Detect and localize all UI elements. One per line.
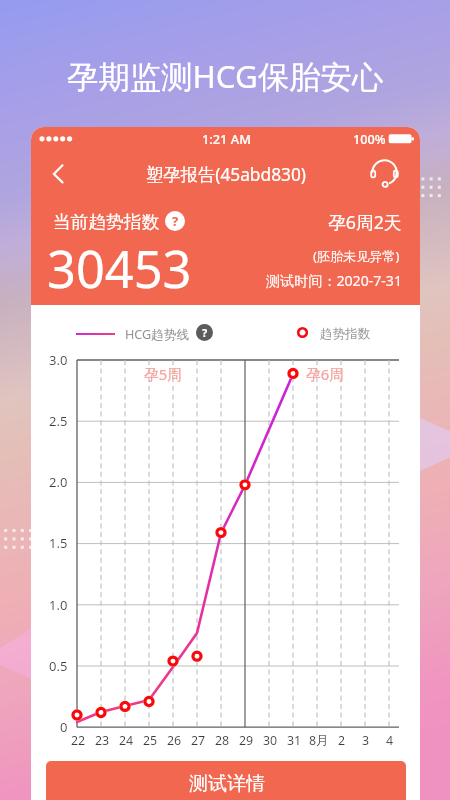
staticText: 孕6周2天 [328,210,402,234]
staticText: 27 [191,732,206,749]
staticText: (胚胎未见异常) [313,247,400,265]
button[interactable]: Back [40,155,78,195]
staticText: 100% [353,130,386,147]
staticText: 孕5周 [144,364,183,384]
staticText: 3 [362,732,370,749]
button[interactable]: 测试详情 [46,761,406,800]
staticText: 孕6周 [306,364,345,384]
button[interactable]: What is the trend index? [165,211,185,231]
staticText: 1.0 [49,596,68,614]
staticText: ? [202,325,208,340]
staticText: 24 [119,732,134,749]
staticText: HCG趋势线 [125,326,189,343]
staticText: 1.5 [49,534,68,552]
staticText: 4 [386,732,394,749]
staticText: 30 [263,732,278,749]
staticText: 塑孕报告(45abd830) [146,163,307,187]
staticText: 29 [239,732,254,749]
staticText: 0.5 [49,657,68,675]
staticText: 25 [143,732,158,749]
staticText: ? [172,212,179,230]
staticText: 23 [95,732,110,749]
staticText: 26 [167,732,182,749]
staticText: 当前趋势指数 [53,211,160,233]
staticText: 22 [71,732,86,749]
staticText: 30453 [47,234,192,303]
staticText: 趋势指数 [320,326,371,342]
staticText: 测试详情 [189,772,265,796]
staticText: 1:21 AM [202,130,251,147]
staticText: 0 [60,718,68,736]
staticText: 8月 [309,732,329,749]
staticText: 28 [215,732,230,749]
button[interactable]: Customer service [370,157,400,191]
staticText: 31 [287,732,302,749]
staticText: 2.0 [49,473,68,491]
staticText: 2 [338,732,346,749]
staticText: 测试时间：2020-7-31 [266,271,402,290]
staticText: 2.5 [49,412,68,430]
staticText: 3.0 [49,351,68,369]
staticText: 孕期监测HCG保胎安心 [67,54,384,97]
button[interactable]: About the HCG trend line [196,324,213,341]
